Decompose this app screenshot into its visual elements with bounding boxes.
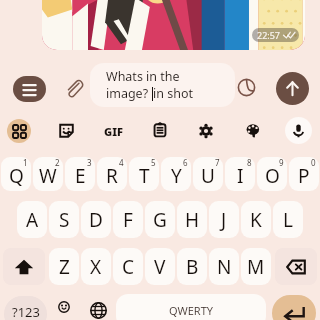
staticText: 0 (311, 157, 316, 168)
button[interactable]: GIF (101, 122, 126, 140)
button[interactable]: Send (276, 72, 309, 105)
staticText: T (139, 163, 150, 189)
staticText: P (298, 163, 310, 189)
staticText: QWERTY (169, 303, 214, 318)
staticText: 8 (247, 157, 252, 168)
button[interactable]: Change language (88, 298, 108, 320)
button[interactable]: Menu (13, 76, 46, 102)
button[interactable]: E (65, 157, 95, 191)
staticText: 22:57 (257, 29, 281, 41)
button[interactable]: X (81, 248, 111, 285)
button[interactable]: K (241, 201, 271, 238)
staticText: B (186, 254, 199, 280)
staticText: Whats in the (106, 68, 180, 85)
staticText: image? (106, 85, 149, 102)
button[interactable]: S (49, 201, 79, 238)
button[interactable]: J (209, 201, 239, 238)
button[interactable]: Backspace (275, 248, 317, 285)
button[interactable]: Y (161, 157, 191, 191)
staticText: N (217, 254, 232, 280)
staticText: W (39, 163, 57, 189)
button[interactable]: Palette (245, 122, 261, 138)
button[interactable]: D (81, 201, 111, 238)
button[interactable]: M (241, 248, 271, 285)
button[interactable]: G (145, 201, 175, 238)
button[interactable]: B (177, 248, 207, 285)
button[interactable]: Emoji (54, 294, 74, 320)
button[interactable]: H (177, 201, 207, 238)
staticText: U (201, 163, 215, 189)
staticText: 7 (215, 157, 220, 168)
button[interactable]: Stickers (58, 122, 75, 139)
button[interactable]: ?123 (4, 296, 47, 320)
staticText: 5 (151, 157, 156, 168)
staticText: ?123 (12, 303, 40, 320)
button[interactable]: Settings (198, 123, 214, 139)
button[interactable]: Attach file (63, 77, 84, 98)
staticText: F (123, 207, 133, 233)
staticText: 1 (23, 157, 28, 168)
staticText: R (106, 163, 118, 189)
button[interactable]: L (273, 201, 303, 238)
button[interactable]: R (97, 157, 127, 191)
button[interactable]: Apps (7, 119, 31, 143)
button[interactable]: V (145, 248, 175, 285)
button[interactable]: C (113, 248, 143, 285)
staticText: A (26, 207, 39, 233)
staticText: J (221, 207, 227, 233)
button[interactable]: F (113, 201, 143, 238)
button[interactable]: Photo message (42, 0, 305, 50)
button[interactable]: W (33, 157, 63, 191)
staticText: 9 (279, 157, 284, 168)
button[interactable]: Q (1, 157, 31, 191)
button[interactable]: T (129, 157, 159, 191)
staticText: Y (171, 163, 182, 189)
button[interactable]: Enter (272, 295, 316, 320)
staticText: S (59, 207, 70, 233)
staticText: in shot (153, 85, 193, 102)
button[interactable]: Voice input (285, 117, 312, 144)
button[interactable]: N (209, 248, 239, 285)
staticText: L (283, 207, 293, 233)
staticText: D (89, 207, 103, 233)
button[interactable]: Z (49, 248, 79, 285)
staticText: E (75, 163, 86, 189)
staticText: I (237, 163, 244, 189)
button[interactable]: P (289, 157, 319, 191)
staticText: 4 (119, 157, 124, 168)
button[interactable]: Shift (3, 248, 45, 285)
button[interactable]: U (193, 157, 223, 191)
staticText: M (247, 254, 265, 280)
staticText: G (153, 207, 167, 233)
button[interactable]: Clipboard (152, 122, 168, 138)
staticText: Q (9, 163, 24, 189)
staticText: Z (59, 254, 70, 280)
staticText: 3 (87, 157, 92, 168)
staticText: C (122, 254, 135, 280)
staticText: X (90, 254, 102, 280)
staticText: 6 (183, 157, 188, 168)
button[interactable]: QWERTY (116, 294, 266, 320)
staticText: 2 (55, 157, 60, 168)
staticText: O (265, 163, 280, 189)
staticText: V (154, 254, 166, 280)
button[interactable]: O (257, 157, 287, 191)
staticText: K (250, 207, 262, 233)
button[interactable]: Theme (237, 78, 256, 97)
button[interactable]: I (225, 157, 255, 191)
staticText: GIF (104, 124, 123, 139)
staticText: H (185, 207, 200, 233)
button[interactable]: A (17, 201, 47, 238)
